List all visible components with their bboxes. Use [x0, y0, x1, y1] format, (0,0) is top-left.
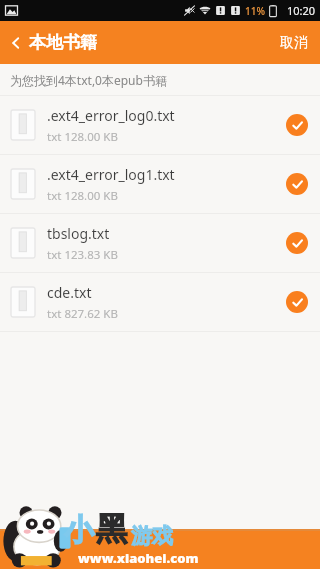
- staticText: .ext4_error_log1.txt: [47, 165, 175, 184]
- staticText: tbslog.txt: [47, 224, 110, 243]
- button[interactable]: Selected: [286, 232, 308, 254]
- staticText: 11%: [245, 4, 265, 18]
- staticText: 游戏: [131, 523, 173, 549]
- button[interactable]: Selected: [286, 114, 308, 136]
- staticText: 黑: [96, 509, 128, 549]
- staticText: txt 128.00 KB: [47, 129, 118, 145]
- staticText: .ext4_error_log0.txt: [47, 106, 175, 125]
- staticText: 本地书籍: [29, 32, 97, 53]
- staticText: txt 128.00 KB: [47, 188, 118, 204]
- staticText: 小: [64, 511, 94, 549]
- staticText: txt 123.83 KB: [47, 247, 118, 263]
- button[interactable]: Selected: [286, 291, 308, 313]
- button[interactable]: 取消: [268, 26, 320, 60]
- button[interactable]: cde.txt: [0, 273, 320, 331]
- button[interactable]: .ext4_error_log0.txt: [0, 96, 320, 154]
- button[interactable]: .ext4_error_log1.txt: [0, 155, 320, 213]
- staticText: txt 827.62 KB: [47, 306, 118, 322]
- other: Back: [9, 36, 23, 50]
- button[interactable]: Selected: [286, 173, 308, 195]
- staticText: cde.txt: [47, 283, 92, 302]
- button[interactable]: Back: [0, 26, 107, 59]
- staticText: 为您找到4本txt,0本epub书籍: [10, 72, 167, 88]
- staticText: www.xiaohei.com: [78, 549, 199, 567]
- staticText: 取消: [280, 34, 308, 52]
- staticText: 10:20: [287, 3, 316, 18]
- button[interactable]: tbslog.txt: [0, 214, 320, 272]
